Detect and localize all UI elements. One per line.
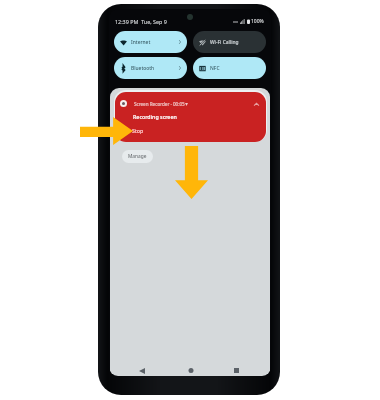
staticText: 12:39 PM Tue, Sep 9 xyxy=(115,18,167,25)
staticText: Internet xyxy=(131,39,151,46)
staticText: NFC xyxy=(210,65,220,72)
staticText: Recording screen xyxy=(133,113,177,120)
button[interactable]: Back xyxy=(139,368,145,374)
button[interactable]: Manage xyxy=(122,150,153,163)
button[interactable]: Stop xyxy=(132,127,144,134)
staticText: 100% xyxy=(251,18,264,25)
staticText: Manage xyxy=(128,153,147,160)
button[interactable]: Wi-Fi Calling xyxy=(193,31,266,53)
button[interactable]: Internet xyxy=(114,31,187,53)
button[interactable]: Bluetooth xyxy=(114,57,187,79)
button[interactable]: NFC xyxy=(193,57,266,79)
staticText: Bluetooth xyxy=(131,65,155,72)
button[interactable]: Screen Recorder · 00:05 xyxy=(115,92,266,142)
button[interactable]: Home xyxy=(188,368,194,373)
staticText: Wi-Fi Calling xyxy=(210,39,239,46)
button[interactable]: Collapse xyxy=(253,101,260,108)
staticText: Screen Recorder · 00:05 xyxy=(134,101,185,107)
